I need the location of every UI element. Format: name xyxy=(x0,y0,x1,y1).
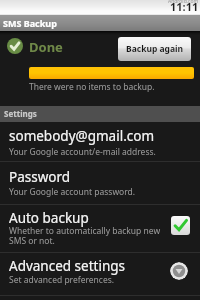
button[interactable]: Auto backup enabled xyxy=(171,216,190,235)
button[interactable]: somebody@gmail.com xyxy=(0,122,200,161)
button[interactable]: Expand advanced settings xyxy=(170,262,188,280)
staticText: Auto backup xyxy=(9,209,89,227)
staticText: Android.com xyxy=(168,0,199,5)
button[interactable]: Password xyxy=(0,162,200,204)
staticText: Backup again xyxy=(126,43,184,55)
staticText: Whether to automatically backup new SMS … xyxy=(9,225,161,247)
staticText: Your Google account/e-mail address. xyxy=(9,146,156,158)
staticText: Advanced settings xyxy=(9,257,126,275)
staticText: Settings xyxy=(4,108,37,119)
staticText: Password xyxy=(9,168,71,186)
staticText: Set advanced preferences. xyxy=(9,274,115,286)
button[interactable]: Auto backup xyxy=(0,205,200,252)
staticText: There were no items to backup. xyxy=(29,81,155,93)
button[interactable]: Backup again xyxy=(118,37,191,61)
button[interactable]: Advanced settings xyxy=(0,253,200,295)
staticText: somebody@gmail.com xyxy=(9,127,155,145)
staticText: 11:11 xyxy=(170,0,199,14)
staticText: Your Google account password. xyxy=(9,186,136,198)
staticText: Done xyxy=(29,38,63,56)
staticText: SMS Backup xyxy=(3,17,57,29)
